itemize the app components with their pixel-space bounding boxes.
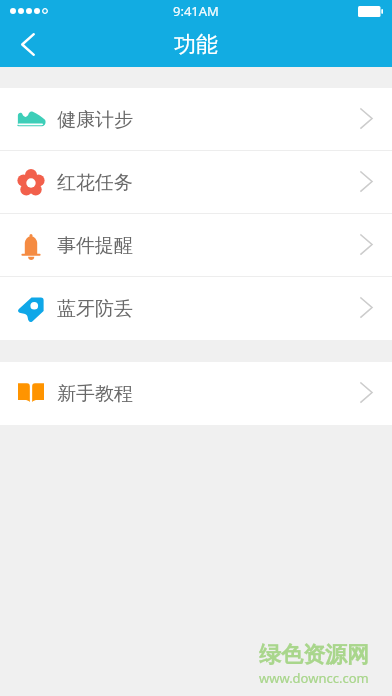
staticText: www.downcc.com [259,669,369,687]
staticText: 功能 [174,31,218,59]
staticText: 事件提醒 [57,234,133,258]
button[interactable]: 红花任务 [0,151,392,214]
staticText: 9:41AM [173,2,219,20]
button[interactable]: 事件提醒 [0,214,392,277]
staticText: 新手教程 [57,382,133,406]
staticText: 红花任务 [57,171,133,195]
staticText: 蓝牙防丢 [57,297,133,321]
button[interactable]: 新手教程 [0,362,392,425]
button[interactable]: 蓝牙防丢 [0,277,392,340]
staticText: 健康计步 [57,108,133,132]
staticText: 绿色资源网 [259,641,369,669]
button[interactable]: 健康计步 [0,88,392,151]
button[interactable]: Back [0,22,54,67]
